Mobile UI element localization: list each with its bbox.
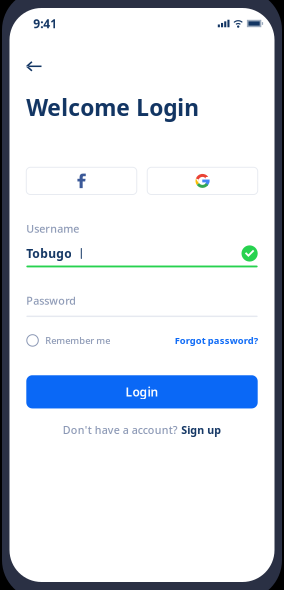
button[interactable]: Forgot password? (175, 334, 258, 347)
staticText: Login (125, 384, 158, 400)
button[interactable]: Back (9, 54, 54, 78)
button[interactable]: Continue with Google (147, 167, 258, 194)
staticText: Remember me (45, 334, 110, 347)
button[interactable]: Remember me (26, 334, 110, 347)
staticText: Forgot password? (175, 334, 258, 347)
staticText: Username (26, 222, 79, 236)
staticText: Don't have a account? (63, 423, 178, 437)
staticText: 9:41 (33, 15, 57, 31)
staticText: Password (26, 293, 76, 308)
staticText: Welcome Login (26, 92, 199, 122)
button[interactable]: Don't have a account? (63, 423, 221, 437)
staticText: Tobugo (26, 245, 72, 261)
staticText: Sign up (181, 423, 221, 437)
button[interactable]: Login (26, 375, 258, 408)
button[interactable]: Continue with Facebook (26, 167, 137, 194)
